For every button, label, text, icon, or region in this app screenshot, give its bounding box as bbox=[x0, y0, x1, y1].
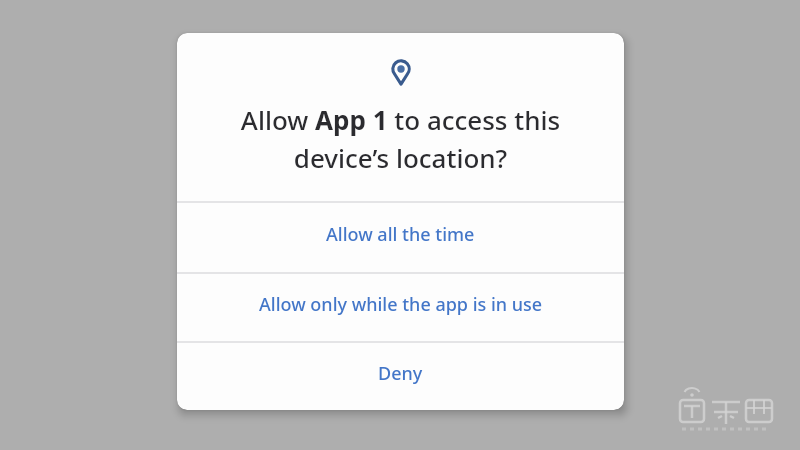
staticText: Deny bbox=[378, 361, 423, 386]
staticText: Allow App 1 to access this device’s loca… bbox=[177, 102, 624, 175]
button[interactable]: Allow only while the app is in use bbox=[177, 274, 624, 341]
staticText: Allow all the time bbox=[326, 222, 475, 247]
staticText: Allow only while the app is in use bbox=[259, 292, 543, 317]
button[interactable]: Allow all the time bbox=[177, 203, 624, 272]
button[interactable]: Deny bbox=[177, 343, 624, 410]
